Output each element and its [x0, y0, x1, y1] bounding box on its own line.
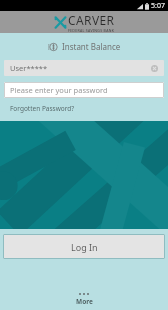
other: Clear username — [151, 65, 158, 72]
staticText: User***** — [10, 63, 48, 73]
button[interactable]: More — [0, 292, 168, 307]
button[interactable]: User***** — [4, 60, 164, 76]
staticText: FEDERAL SAVINGS BANK — [68, 28, 115, 33]
button[interactable]: Forgotten Password? — [8, 102, 77, 115]
button[interactable]: Log In — [3, 234, 165, 259]
staticText: More — [76, 297, 93, 306]
button[interactable]: Instant Balance — [0, 38, 168, 55]
staticText: Please enter your password — [10, 85, 108, 95]
staticText: CARVER — [68, 12, 115, 28]
staticText: Forgotten Password? — [10, 104, 75, 113]
staticText: Instant Balance — [62, 41, 121, 52]
staticText: Log In — [71, 241, 98, 253]
button[interactable]: Please enter your password — [4, 82, 164, 98]
staticText: 5:07 — [151, 1, 165, 11]
